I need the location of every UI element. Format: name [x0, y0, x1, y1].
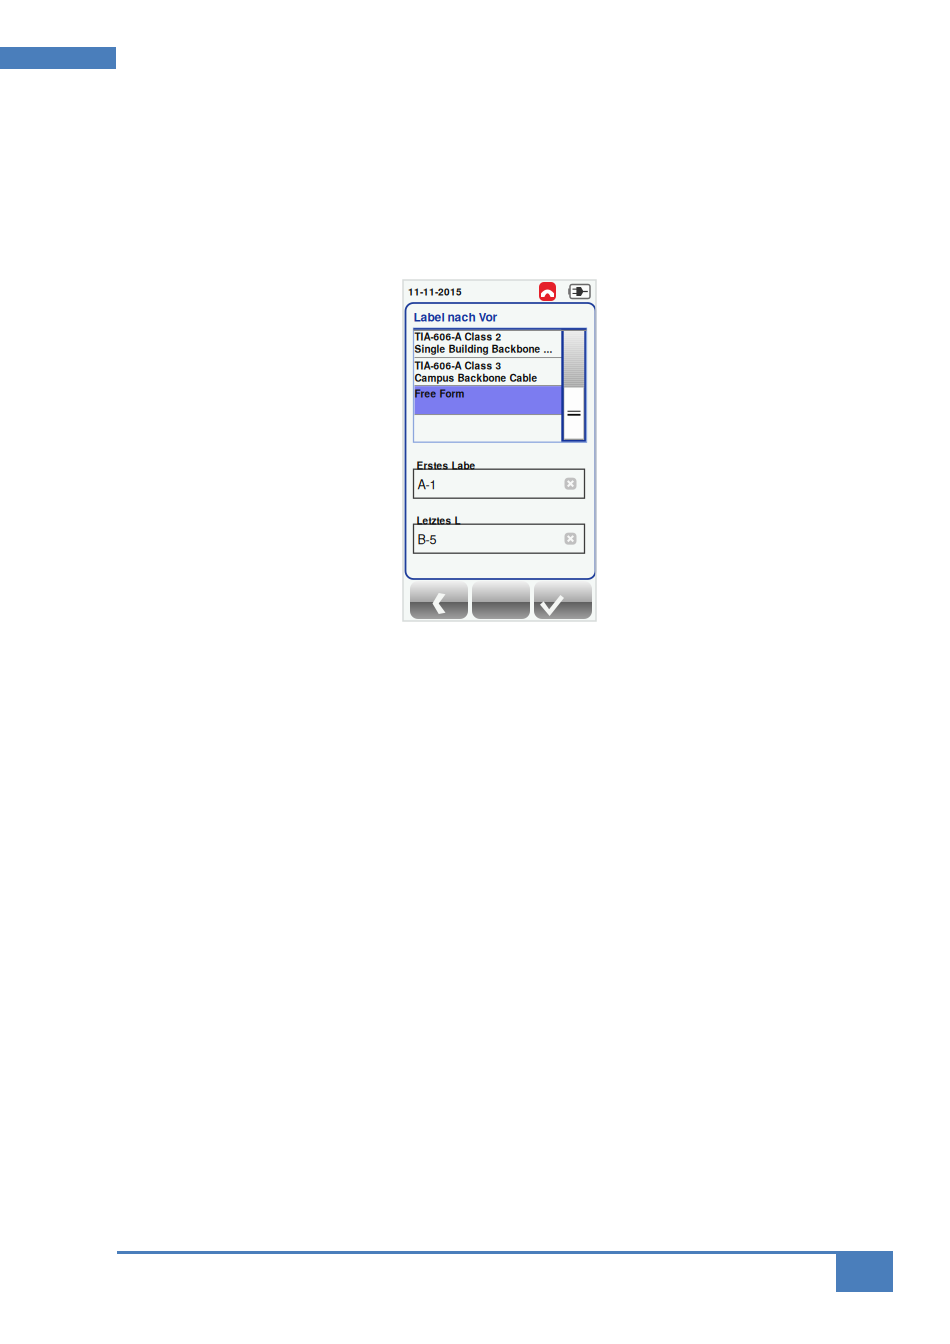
staticText: Single Building Backbone ...: [414, 341, 552, 356]
staticText: Letztes L: [416, 513, 460, 527]
button[interactable]: TIA-606-A Class 2: [414, 329, 562, 357]
staticText: TIA-606-A Class 2: [414, 329, 501, 343]
button[interactable]: A-1: [413, 469, 584, 498]
button[interactable]: Menu: [472, 581, 530, 619]
staticText: Label nach Vor: [413, 308, 497, 325]
button[interactable]: TIA-606-A Class 3: [414, 358, 562, 385]
staticText: B-5: [417, 530, 436, 548]
staticText: TIA-606-A Class 3: [414, 358, 501, 372]
button[interactable]: Free Form: [414, 386, 562, 414]
staticText: Free Form: [414, 386, 464, 400]
button[interactable]: B-5: [413, 524, 584, 553]
staticText: A-1: [417, 475, 436, 493]
staticText: 11-11-2015: [408, 284, 462, 299]
button[interactable]: Scroll list: [562, 329, 585, 441]
staticText: Campus Backbone Cable: [414, 370, 537, 385]
button[interactable]: Confirm: [534, 581, 592, 619]
staticText: Erstes Labe: [416, 458, 475, 472]
button[interactable]: Back: [410, 581, 468, 619]
